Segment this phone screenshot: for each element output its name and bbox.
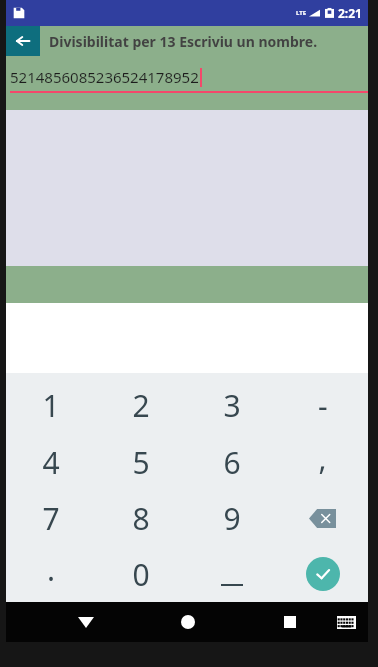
staticText: 8 (132, 498, 150, 539)
button[interactable]: 2 (96, 377, 186, 434)
button[interactable]: , (277, 434, 368, 490)
staticText: 5 (132, 442, 150, 483)
staticText: Divisibilitat per 13 Escriviu un nombre. (49, 32, 318, 51)
staticText: 7 (42, 498, 60, 539)
button[interactable] (186, 546, 277, 602)
button[interactable]: Backspace (277, 490, 368, 546)
button[interactable]: Recents (266, 602, 314, 642)
button[interactable]: - (277, 377, 368, 434)
staticText: , (318, 438, 327, 479)
button[interactable]: 0 (96, 546, 186, 602)
staticText: 2:21 (338, 5, 362, 21)
button[interactable]: 5 (96, 434, 186, 490)
staticText: - (318, 385, 328, 426)
button[interactable]: 6 (186, 434, 277, 490)
staticText: 4 (42, 442, 60, 483)
button[interactable]: 1 (6, 377, 96, 434)
button[interactable]: 7 (6, 490, 96, 546)
staticText: 6 (223, 442, 241, 483)
staticText: 0 (132, 554, 150, 595)
staticText: . (47, 549, 56, 590)
staticText: 1 (42, 385, 60, 426)
staticText: 2 (132, 385, 150, 426)
button[interactable]: Home (164, 602, 212, 642)
button[interactable]: 9 (186, 490, 277, 546)
staticText: 5214856085236524178952 (10, 67, 199, 87)
button[interactable]: . (6, 546, 96, 602)
button[interactable]: 3 (186, 377, 277, 434)
button[interactable]: 4 (6, 434, 96, 490)
staticText: 3 (223, 385, 241, 426)
button[interactable]: Done (277, 546, 368, 602)
button[interactable]: 8 (96, 490, 186, 546)
staticText: 9 (223, 498, 241, 539)
button[interactable]: Back (62, 602, 110, 642)
staticText: LTE (296, 9, 307, 17)
button[interactable]: Back (6, 26, 40, 56)
button[interactable]: Change keyboard (324, 602, 368, 642)
